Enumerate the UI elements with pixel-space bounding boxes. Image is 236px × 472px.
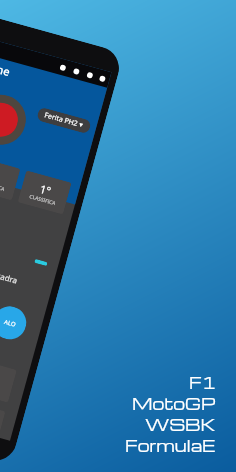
button[interactable]: [0, 372, 6, 444]
staticText: FormulaE: [125, 435, 216, 456]
button[interactable]: 1°: [18, 170, 72, 215]
staticText: Ferita PH2 ▾: [43, 110, 84, 131]
staticText: ALO: [3, 318, 17, 329]
button[interactable]: Driver: [0, 89, 32, 150]
staticText: Ferrari One: [0, 49, 12, 79]
staticText: 1°: [38, 181, 53, 198]
button[interactable]: Gran Premio: [0, 331, 17, 403]
button[interactable]: 1°: [0, 156, 21, 200]
staticText: CLASSIFICA: [29, 193, 56, 207]
staticText: WSBK: [145, 414, 216, 435]
staticText: Classifica di squadra: [0, 255, 19, 286]
staticText: MotoGP: [132, 393, 216, 414]
button[interactable]: Alonso: [0, 303, 30, 343]
staticText: F1: [189, 372, 216, 393]
staticText: CLASSIFICA: [0, 179, 5, 193]
button[interactable]: Ferita PH2 ▾: [36, 107, 92, 134]
